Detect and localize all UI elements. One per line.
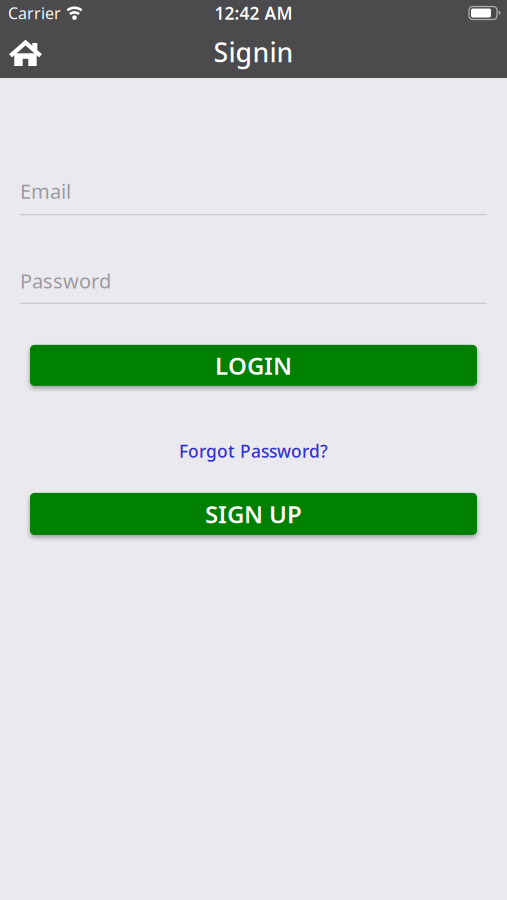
staticText: Email xyxy=(20,178,71,204)
staticText: Password xyxy=(20,267,111,294)
staticText: SIGN UP xyxy=(205,498,302,530)
button[interactable]: Home xyxy=(0,30,41,78)
staticText: Forgot Password? xyxy=(179,439,328,462)
button[interactable]: LOGIN xyxy=(30,345,477,386)
staticText: LOGIN xyxy=(215,349,292,381)
textField[interactable]: Email xyxy=(20,178,487,204)
staticText: Email xyxy=(20,178,71,204)
staticText: 12:42 AM xyxy=(214,1,292,24)
button[interactable]: Forgot Password? xyxy=(179,439,328,462)
staticText: Password xyxy=(20,267,111,294)
staticText: Carrier xyxy=(8,2,61,24)
secureTextField[interactable]: Password xyxy=(20,267,487,294)
staticText: Signin xyxy=(213,34,293,70)
button[interactable]: SIGN UP xyxy=(30,493,477,535)
